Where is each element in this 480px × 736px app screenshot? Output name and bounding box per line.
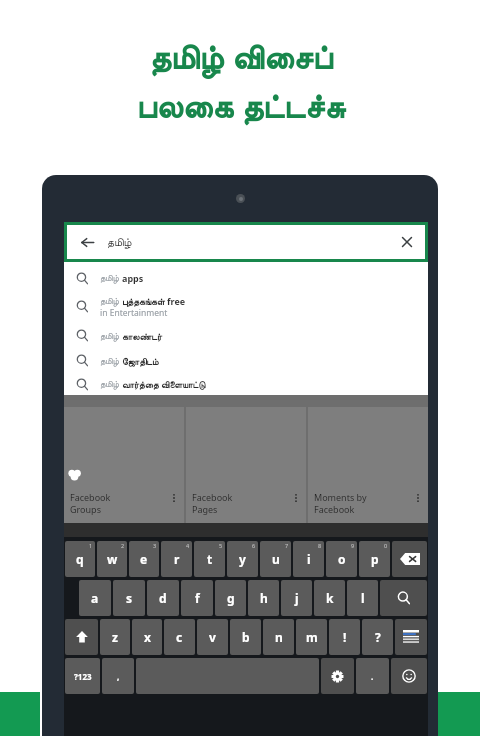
button[interactable]: o [326, 541, 357, 577]
staticText: பலகை தட்டச்சு [136, 83, 345, 128]
staticText: வார்த்தை விளையாட்டு [122, 378, 206, 390]
button[interactable]: m [296, 619, 327, 655]
staticText: தமிழ் [100, 378, 122, 390]
button[interactable]: u [260, 541, 291, 577]
staticText: k [326, 590, 334, 606]
button[interactable]: w [97, 541, 127, 577]
staticText: q [76, 551, 84, 567]
staticText: Facebook [314, 503, 355, 515]
staticText: 7 [285, 542, 289, 549]
staticText: Pages [192, 503, 218, 515]
button[interactable]: d [147, 580, 179, 616]
button[interactable]: தமிழ் [64, 266, 428, 290]
staticText: 2 [121, 542, 125, 549]
button[interactable]: t [194, 541, 225, 577]
staticText: w [107, 551, 118, 567]
button[interactable]: More options [411, 491, 425, 505]
staticText: x [144, 629, 151, 645]
staticText: z [112, 629, 118, 645]
button[interactable]: a [79, 580, 111, 616]
button[interactable]: ?123 [65, 658, 100, 694]
button[interactable]: y [227, 541, 258, 577]
button[interactable]: Search [380, 580, 427, 616]
staticText: தமிழ் [100, 272, 122, 284]
staticText: ஜோதிடம் [122, 358, 159, 367]
button[interactable]: Clear [389, 225, 425, 259]
button[interactable]: . [356, 658, 389, 694]
staticText: 4 [186, 542, 190, 549]
button[interactable]: h [248, 580, 279, 616]
button[interactable]: v [197, 619, 228, 655]
button[interactable]: r [161, 541, 192, 577]
staticText: in Entertainment [100, 307, 168, 319]
staticText: 1 [89, 542, 93, 549]
staticText: o [338, 551, 346, 567]
button[interactable]: n [263, 619, 294, 655]
button[interactable]: தமிழ் [64, 323, 428, 348]
staticText: e [140, 551, 148, 567]
button[interactable]: தமிழ் [64, 348, 428, 373]
button[interactable]: , [102, 658, 134, 694]
staticText: f [195, 590, 200, 606]
button[interactable]: Switch to Tamil [395, 619, 427, 655]
button[interactable]: தமிழ் [64, 290, 428, 323]
staticText: i [307, 551, 311, 567]
button[interactable]: Facebook [64, 407, 184, 523]
staticText: p [371, 551, 379, 567]
staticText: m [306, 629, 318, 645]
staticText: u [272, 551, 280, 567]
button[interactable]: g [215, 580, 246, 616]
button[interactable]: j [281, 580, 312, 616]
button[interactable]: e [129, 541, 159, 577]
staticText: j [295, 590, 299, 606]
staticText: 9 [351, 542, 355, 549]
button[interactable]: p [359, 541, 390, 577]
button[interactable]: c [164, 619, 195, 655]
button[interactable]: z [100, 619, 130, 655]
button[interactable]: b [230, 619, 261, 655]
staticText: ?123 [74, 671, 92, 682]
staticText: n [275, 629, 283, 645]
staticText: a [91, 590, 99, 606]
staticText: தமிழ் [100, 330, 122, 342]
button[interactable]: Facebook [186, 407, 306, 523]
staticText: 6 [252, 542, 256, 549]
button[interactable]: More options [289, 491, 303, 505]
staticText: b [242, 629, 250, 645]
button[interactable]: தமிழ் [64, 373, 428, 395]
button[interactable]: l [347, 580, 378, 616]
button[interactable]: Settings [321, 658, 354, 694]
button[interactable]: Backspace [392, 541, 427, 577]
staticText: , [117, 671, 120, 682]
button[interactable]: k [314, 580, 345, 616]
staticText: y [239, 551, 246, 567]
staticText: 8 [318, 542, 322, 549]
staticText: g [227, 590, 235, 606]
button[interactable]: ? [362, 619, 393, 655]
button[interactable]: s [113, 580, 145, 616]
button[interactable]: Shift [65, 619, 98, 655]
button[interactable]: ! [329, 619, 360, 655]
staticText: புத்தகங்கள் free [122, 295, 186, 307]
button[interactable]: q [65, 541, 95, 577]
button[interactable]: f [181, 580, 213, 616]
staticText: தமிழ் விசைப் [149, 34, 332, 79]
button[interactable]: Back [67, 225, 107, 259]
button[interactable]: Emoji [391, 658, 427, 694]
staticText: l [361, 590, 365, 606]
staticText: s [126, 590, 133, 606]
staticText: தமிழ் [100, 355, 122, 367]
staticText: காலண்டர் [122, 333, 162, 342]
button[interactable]: i [293, 541, 324, 577]
staticText: தமிழ் [100, 295, 122, 307]
staticText: தமிழ் [107, 237, 132, 248]
button[interactable]: Back [67, 225, 425, 259]
button[interactable]: More options [167, 491, 181, 505]
staticText: Moments by [314, 491, 367, 503]
staticText: Facebook [70, 491, 111, 503]
staticText: h [260, 590, 268, 606]
button[interactable]: x [132, 619, 162, 655]
button[interactable]: Moments by [308, 407, 428, 523]
staticText: 0 [384, 542, 388, 549]
